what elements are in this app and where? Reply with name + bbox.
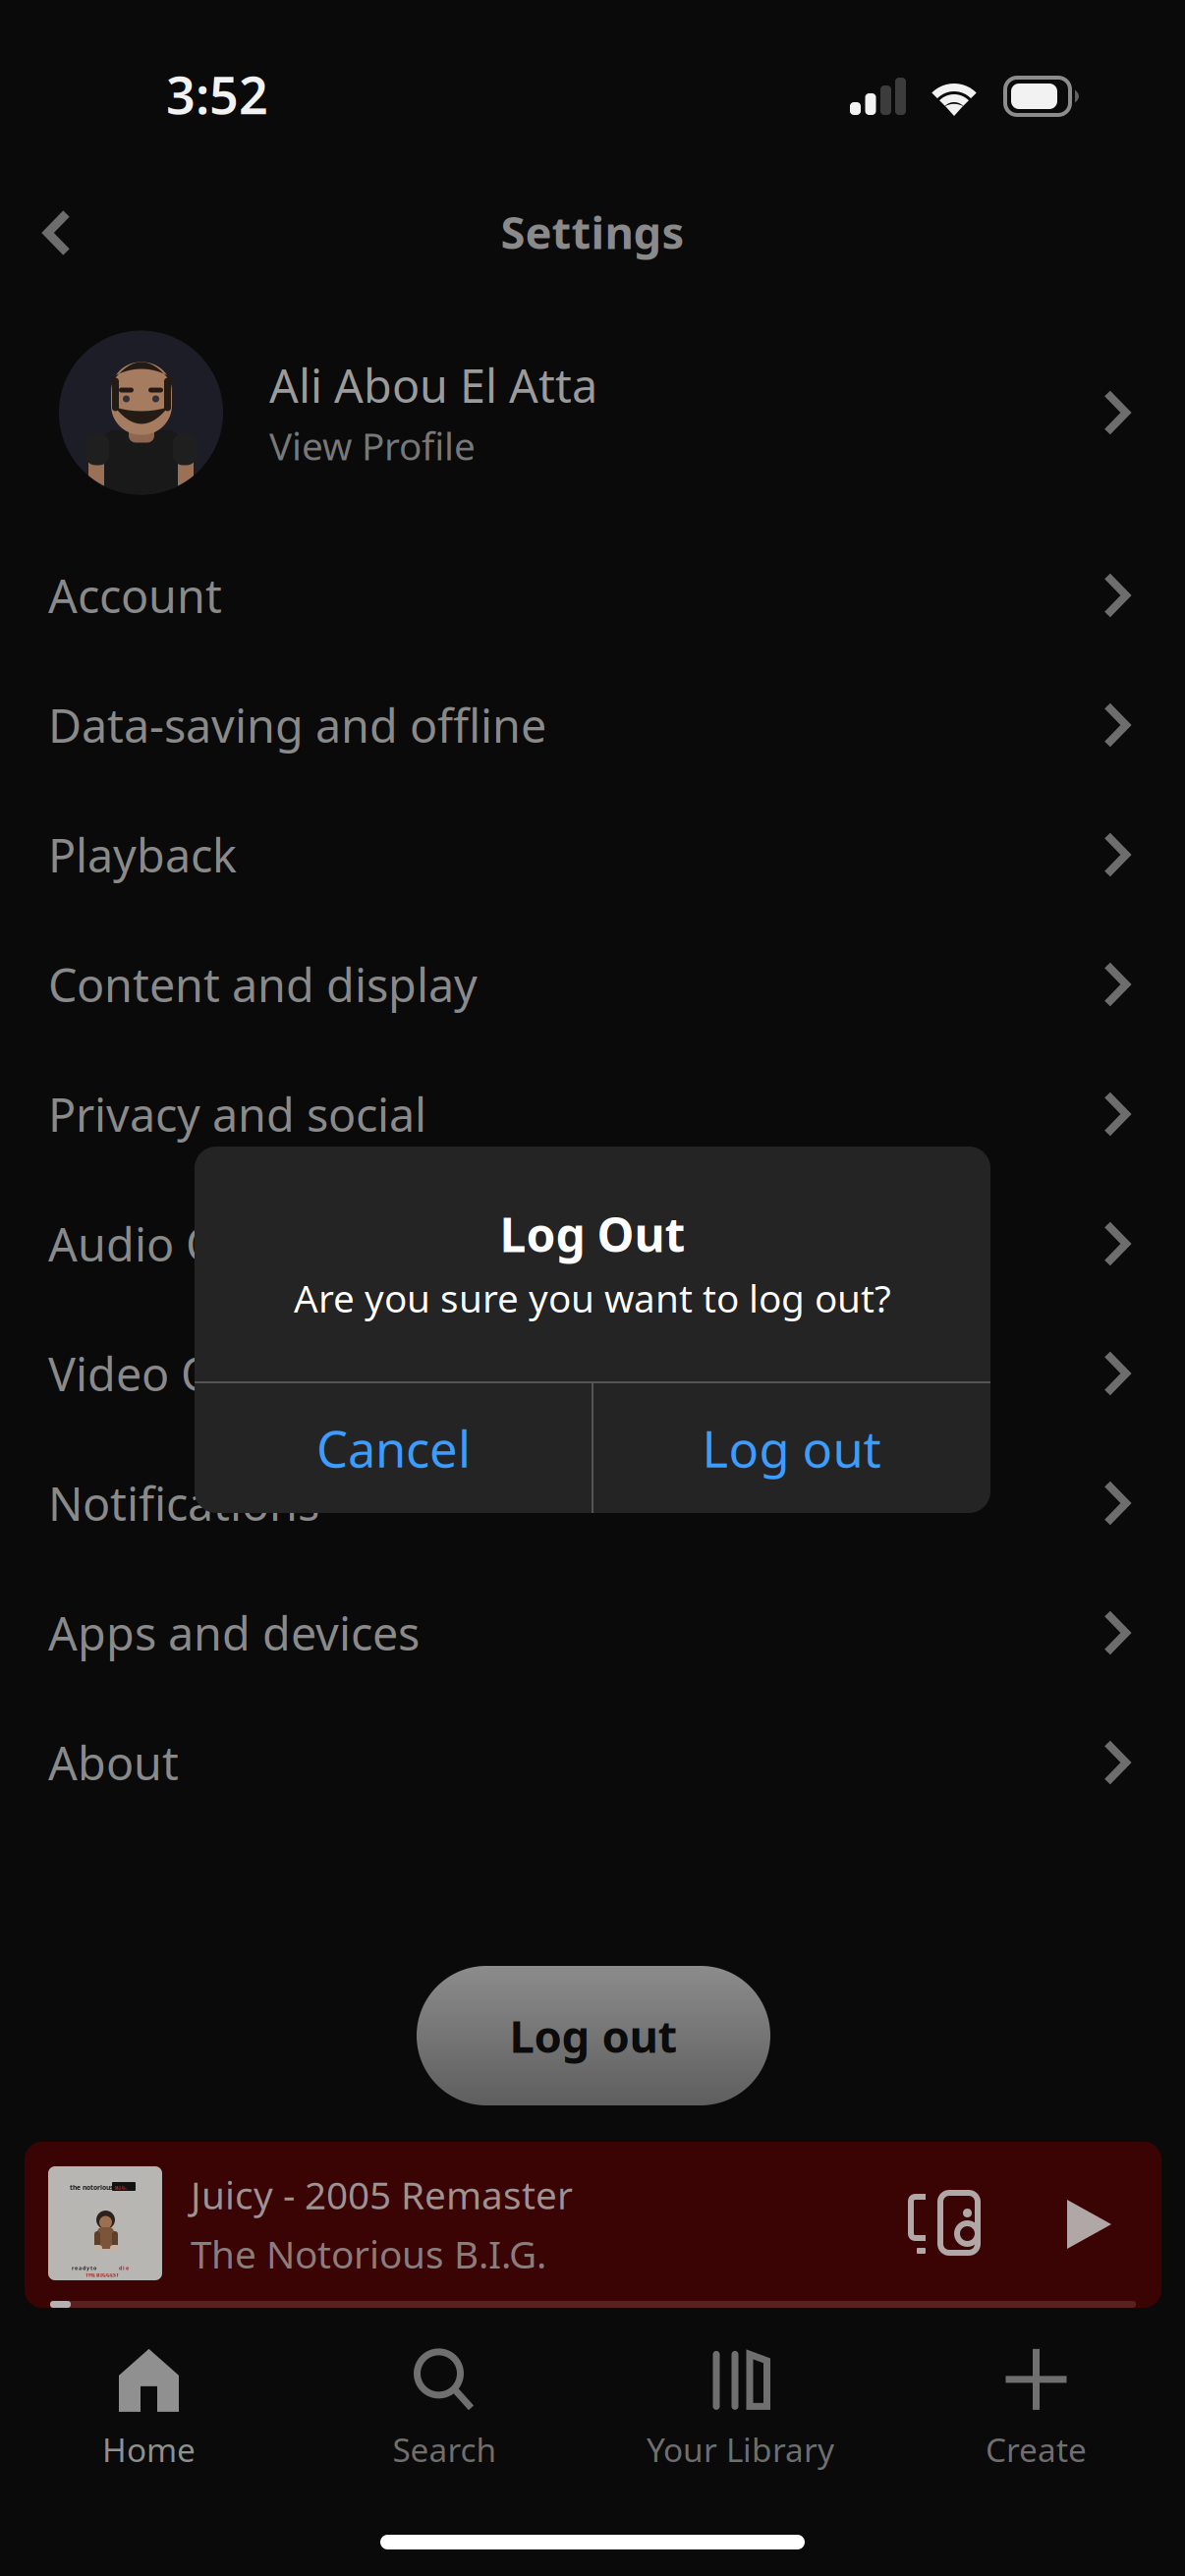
button[interactable]: Log out (417, 1966, 770, 2105)
staticText: Ali Abou El Atta (269, 354, 597, 415)
button[interactable]: Privacy and social (0, 1049, 1185, 1179)
staticText: Home (102, 2428, 196, 2471)
staticText: Log out (702, 1415, 881, 1481)
button[interactable]: Back (6, 182, 108, 284)
staticText: Audio Quality (48, 1213, 339, 1274)
staticText: THE BIGGEST (85, 2271, 119, 2278)
staticText: d i e (119, 2265, 129, 2272)
staticText: Notifications (48, 1473, 319, 1534)
staticText: r e a d y t o (72, 2265, 96, 2272)
button[interactable]: Connect to a device (908, 2193, 978, 2254)
staticText: Apps and devices (48, 1602, 420, 1663)
staticText: Juicy - 2005 Remaster (191, 2169, 573, 2220)
button[interactable]: Audio Quality (0, 1179, 1185, 1309)
button[interactable]: Cancel (195, 1383, 592, 1513)
button[interactable]: Log out (592, 1383, 990, 1513)
button[interactable]: Data-saving and offline (0, 660, 1185, 790)
button[interactable]: Video Quality (0, 1309, 1185, 1438)
button[interactable]: Playback (0, 790, 1185, 920)
staticText: The Notorious B.I.G. (191, 2229, 546, 2279)
staticText: Content and display (48, 954, 478, 1015)
button[interactable]: Create (888, 2346, 1184, 2474)
staticText: Search (393, 2428, 497, 2471)
staticText: Create (986, 2428, 1087, 2471)
staticText: Your Library (647, 2428, 834, 2471)
staticText: Data-saving and offline (48, 695, 546, 756)
button[interactable]: Content and display (0, 920, 1185, 1049)
staticText: B.I.G. (115, 2184, 127, 2191)
staticText: View Profile (269, 420, 476, 471)
staticText: Cancel (316, 1415, 471, 1481)
staticText: Are you sure you want to log out? (294, 1273, 891, 1323)
button[interactable]: Account (0, 531, 1185, 660)
staticText: the notorious (70, 2183, 113, 2192)
staticText: Playback (48, 824, 237, 885)
button[interactable]: the notorious (25, 2142, 1161, 2308)
staticText: Privacy and social (48, 1084, 426, 1145)
button[interactable]: Home (1, 2346, 297, 2474)
button[interactable]: Your Library (592, 2346, 888, 2474)
button[interactable]: Ali Abou El Atta (0, 305, 1185, 521)
staticText: About (48, 1732, 179, 1793)
staticText: Settings (501, 202, 684, 261)
button[interactable]: Apps and devices (0, 1568, 1185, 1698)
staticText: 3:52 (166, 60, 268, 128)
staticText: Log out (509, 2006, 677, 2065)
button[interactable]: Play (1067, 2200, 1111, 2249)
staticText: Account (48, 565, 222, 626)
button[interactable]: About (0, 1698, 1185, 1827)
staticText: Video Quality (48, 1343, 334, 1404)
staticText: Log Out (500, 1203, 685, 1265)
button[interactable]: Search (297, 2346, 592, 2474)
button[interactable]: Notifications (0, 1438, 1185, 1568)
